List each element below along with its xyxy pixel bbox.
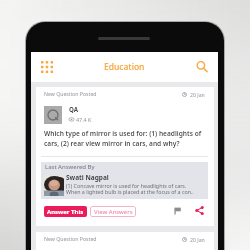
staticText: QA (69, 105, 79, 113)
staticText: When a lighted bulb is placed at the foc… (66, 188, 194, 195)
staticText: Last Answered By (45, 163, 95, 171)
staticText: Swati Nagpal (66, 173, 109, 182)
staticText: (1) Concave mirror is used for headlight… (66, 182, 187, 189)
button[interactable]: Search (192, 57, 212, 77)
button[interactable]: Report (171, 204, 184, 217)
staticText: Answer This (47, 208, 84, 216)
staticText: 47.4 K (76, 116, 92, 123)
staticText: 20 Jan (190, 236, 205, 243)
button[interactable]: Apps menu (36, 56, 58, 78)
button[interactable]: Share (193, 204, 206, 217)
staticText: New Question Posted (44, 235, 97, 242)
staticText: View Answers (94, 208, 133, 216)
staticText: Education (104, 61, 145, 73)
button[interactable]: Answer This (44, 206, 87, 217)
staticText: Which type of mirror is used for: (1) he… (44, 129, 207, 148)
staticText: 20 Jan (190, 91, 205, 98)
staticText: New Question Posted (44, 90, 97, 97)
button[interactable]: View Answers (90, 206, 136, 217)
